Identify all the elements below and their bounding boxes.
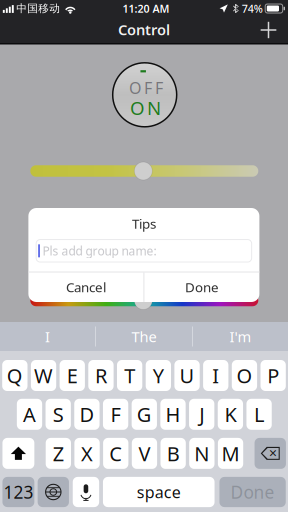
staticText: 中国移动 bbox=[16, 2, 60, 15]
staticText: V bbox=[138, 440, 150, 467]
staticText: E bbox=[67, 362, 78, 389]
staticText: Cancel bbox=[66, 278, 106, 296]
button[interactable]: Colour bbox=[30, 291, 258, 309]
staticText: Q bbox=[7, 362, 23, 389]
staticText: T bbox=[124, 362, 135, 389]
button[interactable]: R bbox=[88, 360, 114, 391]
button[interactable]: Next keyboard bbox=[38, 477, 69, 507]
button[interactable]: H bbox=[160, 399, 186, 430]
button[interactable]: F bbox=[103, 399, 128, 430]
button[interactable]: S bbox=[45, 399, 71, 430]
button[interactable]: D bbox=[74, 399, 99, 430]
button[interactable]: N bbox=[189, 438, 214, 469]
staticText: U bbox=[179, 362, 194, 389]
staticText: H bbox=[165, 401, 180, 428]
button[interactable]: Done bbox=[144, 272, 259, 302]
button[interactable]: E bbox=[60, 360, 85, 391]
staticText: I'm bbox=[229, 327, 251, 346]
staticText: Done bbox=[231, 480, 275, 503]
button[interactable]: B bbox=[160, 438, 186, 469]
button[interactable]: Shift bbox=[2, 438, 34, 469]
button[interactable]: Y bbox=[146, 360, 171, 391]
button[interactable]: space bbox=[103, 477, 215, 507]
staticText: O N bbox=[130, 95, 161, 120]
staticText: M bbox=[221, 440, 239, 467]
staticText: P bbox=[267, 362, 279, 389]
button[interactable]: C bbox=[103, 438, 128, 469]
staticText: C bbox=[109, 440, 122, 467]
button[interactable]: The bbox=[96, 322, 192, 351]
button[interactable]: Delete bbox=[255, 438, 286, 469]
button[interactable]: V bbox=[132, 438, 157, 469]
button[interactable]: X bbox=[74, 438, 100, 469]
staticText: space bbox=[137, 481, 181, 503]
staticText: G bbox=[137, 401, 152, 428]
button[interactable]: O bbox=[232, 360, 257, 391]
button[interactable]: L bbox=[246, 399, 272, 430]
staticText: F bbox=[111, 401, 121, 428]
staticText: O bbox=[236, 362, 252, 389]
button[interactable]: Power toggle bbox=[113, 63, 177, 127]
staticText: 123 bbox=[3, 480, 33, 503]
button[interactable]: Cancel bbox=[28, 272, 143, 302]
staticText: Control bbox=[118, 20, 170, 39]
staticText: 74% bbox=[242, 1, 263, 16]
staticText: 11:20 AM bbox=[122, 1, 169, 16]
button[interactable]: U bbox=[174, 360, 200, 391]
staticText: ✕ bbox=[269, 447, 278, 459]
staticText: D bbox=[79, 401, 94, 428]
staticText: X bbox=[81, 440, 93, 467]
button[interactable]: I bbox=[203, 360, 228, 391]
staticText: Z bbox=[53, 440, 64, 467]
button[interactable]: T bbox=[117, 360, 142, 391]
staticText: L bbox=[254, 401, 264, 428]
button[interactable]: Dictation bbox=[73, 477, 99, 507]
button[interactable]: Add bbox=[250, 17, 286, 43]
staticText: I bbox=[212, 362, 219, 389]
staticText: A bbox=[23, 401, 36, 428]
button[interactable]: Z bbox=[46, 438, 71, 469]
button[interactable]: J bbox=[189, 399, 214, 430]
staticText: N bbox=[194, 440, 209, 467]
staticText: K bbox=[224, 401, 236, 428]
button[interactable]: K bbox=[218, 399, 243, 430]
staticText: Y bbox=[153, 362, 164, 389]
button[interactable]: Q bbox=[2, 360, 27, 391]
staticText: S bbox=[53, 401, 64, 428]
staticText: R bbox=[95, 362, 107, 389]
staticText: J bbox=[199, 401, 204, 428]
button[interactable]: A bbox=[17, 399, 42, 430]
button[interactable]: W bbox=[31, 360, 56, 391]
staticText: B bbox=[167, 440, 180, 467]
staticText: Done bbox=[185, 278, 219, 296]
button[interactable]: G bbox=[132, 399, 157, 430]
button[interactable]: I'm bbox=[193, 322, 288, 351]
staticText: Tips bbox=[132, 215, 156, 232]
staticText: Pls add group name: bbox=[42, 243, 156, 259]
button[interactable]: Brightness bbox=[30, 162, 258, 180]
button[interactable]: I bbox=[0, 322, 95, 351]
staticText: The bbox=[131, 327, 156, 346]
button[interactable]: M bbox=[218, 438, 243, 469]
staticText: O F F bbox=[129, 77, 163, 98]
button[interactable]: P bbox=[260, 360, 286, 391]
staticText: I bbox=[45, 327, 50, 346]
staticText: W bbox=[34, 362, 53, 389]
button[interactable]: Done bbox=[219, 477, 286, 507]
button[interactable]: 123 bbox=[2, 477, 34, 507]
